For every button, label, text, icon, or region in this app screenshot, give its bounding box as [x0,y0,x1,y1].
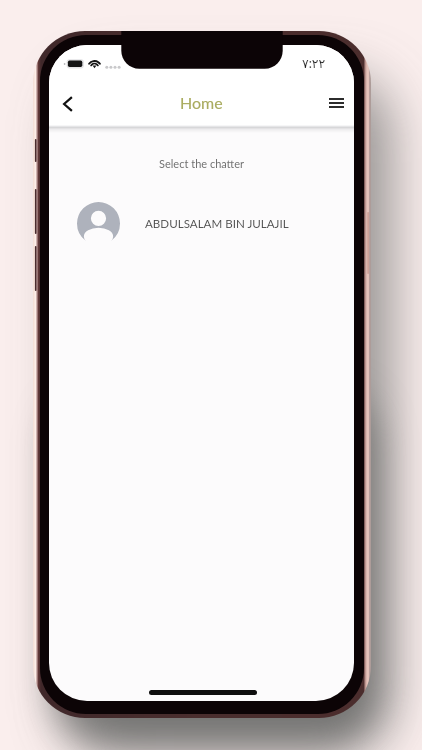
button[interactable]: Menu [319,86,353,120]
staticText: ABDULSALAM BIN JULAJIL [145,217,289,231]
button[interactable]: ABDULSALAM BIN JULAJIL [49,199,354,247]
button[interactable]: Back [51,87,85,121]
staticText: ٧:٢٢ [302,56,326,71]
staticText: Select the chatter [49,157,354,170]
staticText: Home [180,93,223,112]
